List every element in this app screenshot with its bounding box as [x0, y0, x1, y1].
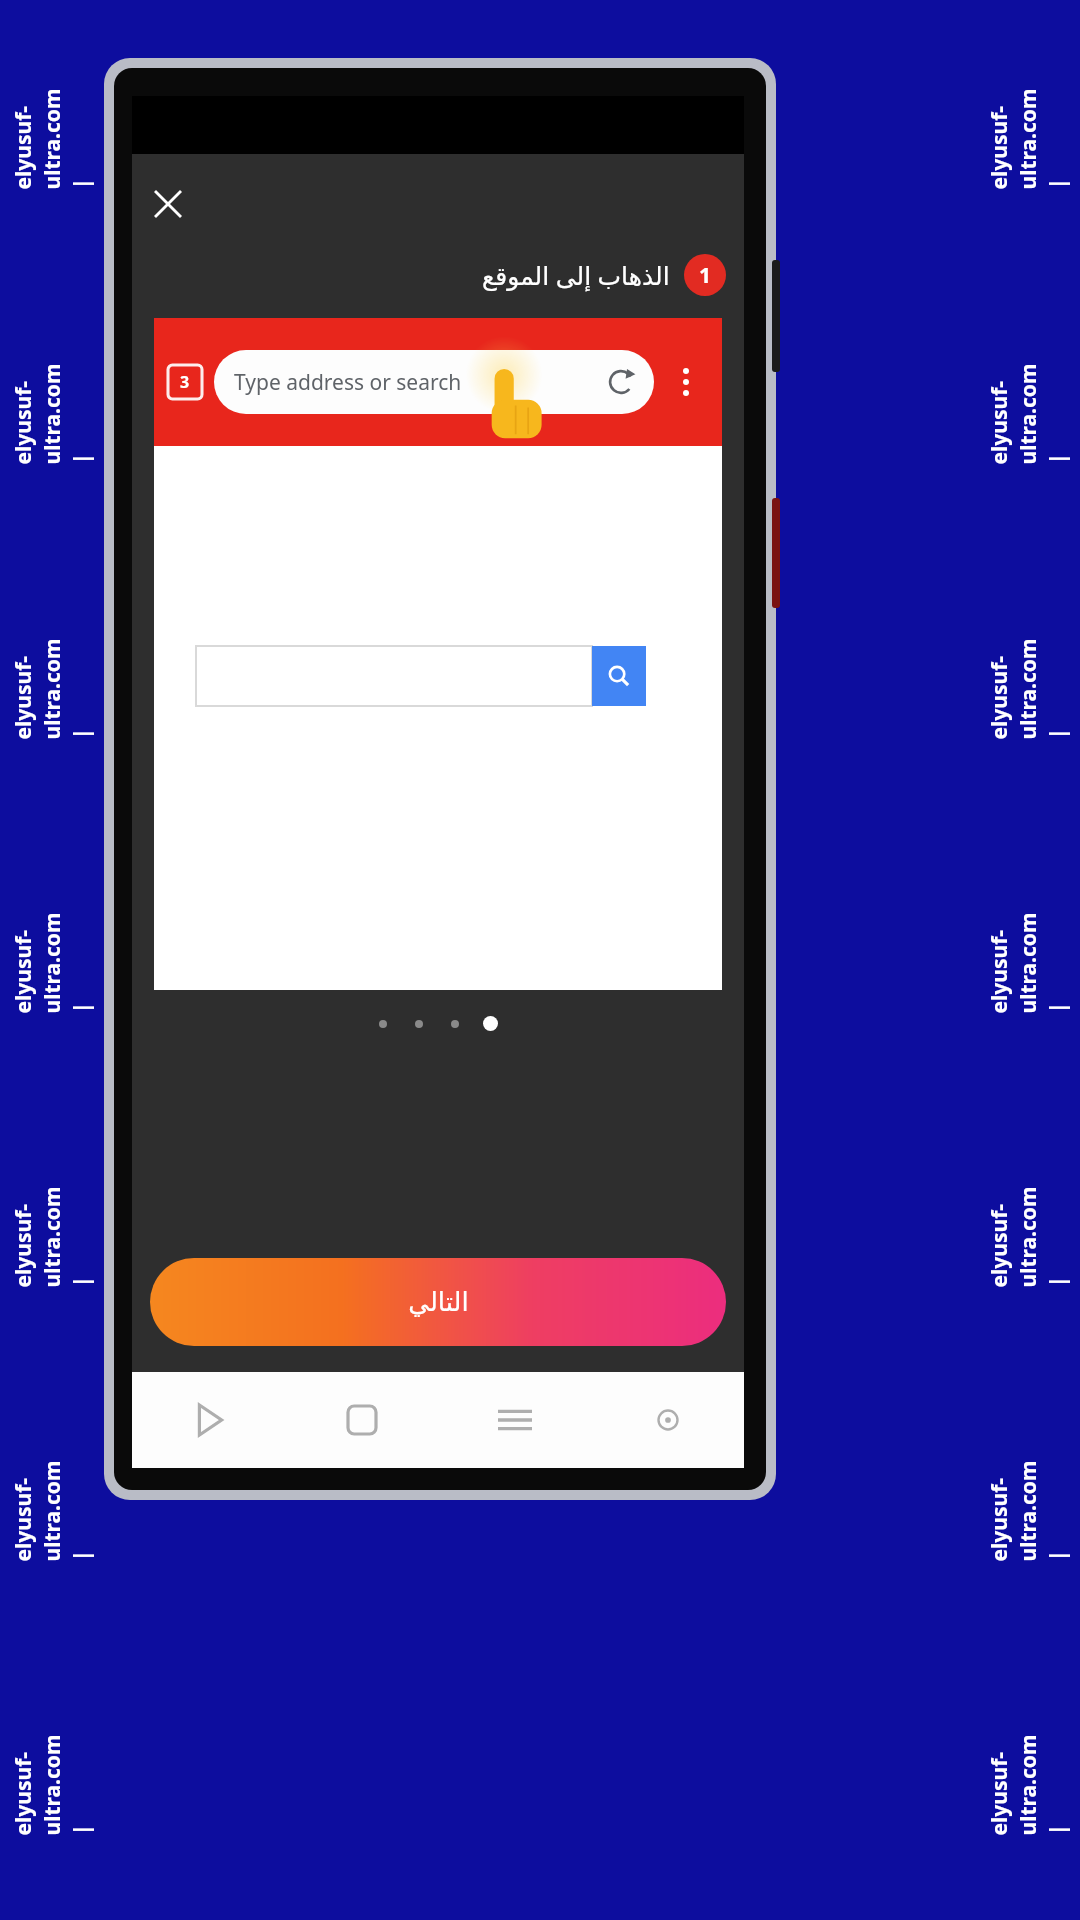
staticText: Type address or search	[234, 368, 462, 397]
button[interactable]: Close	[140, 176, 196, 232]
staticText: elyusuf-ultra.com|	[8, 1457, 95, 1561]
staticText: elyusuf-ultra.com|	[984, 635, 1071, 739]
button[interactable]: More options	[664, 360, 708, 404]
button[interactable]: Tabs	[168, 365, 202, 399]
staticText: elyusuf-ultra.com|	[984, 85, 1071, 189]
staticText: elyusuf-ultra.com|	[8, 85, 95, 189]
staticText: التالي	[408, 1287, 469, 1317]
staticText: 3	[180, 371, 190, 393]
staticText: elyusuf-ultra.com|	[984, 909, 1071, 1013]
staticText: 1	[699, 261, 712, 290]
staticText: elyusuf-ultra.com|	[984, 1457, 1071, 1561]
button[interactable]: Recent apps	[438, 1372, 591, 1468]
button[interactable]: التالي	[150, 1258, 726, 1346]
staticText: الذهاب إلى الموقع	[482, 258, 670, 292]
staticText: elyusuf-ultra.com|	[8, 360, 95, 464]
button[interactable]: Type address or search	[214, 350, 654, 414]
staticText: elyusuf-ultra.com|	[8, 909, 95, 1013]
staticText: elyusuf-ultra.com|	[8, 1731, 95, 1835]
staticText: elyusuf-ultra.com|	[984, 1183, 1071, 1287]
staticText: elyusuf-ultra.com|	[984, 1731, 1071, 1835]
staticText: elyusuf-ultra.com|	[984, 360, 1071, 464]
button[interactable]: Home	[285, 1372, 438, 1468]
button[interactable]: Back	[132, 1372, 285, 1468]
staticText: elyusuf-ultra.com|	[8, 635, 95, 739]
button[interactable]: Search	[592, 646, 646, 706]
other: Reload	[608, 369, 634, 395]
button[interactable]: More	[591, 1372, 744, 1468]
staticText: elyusuf-ultra.com|	[8, 1183, 95, 1287]
button[interactable]	[196, 646, 592, 706]
